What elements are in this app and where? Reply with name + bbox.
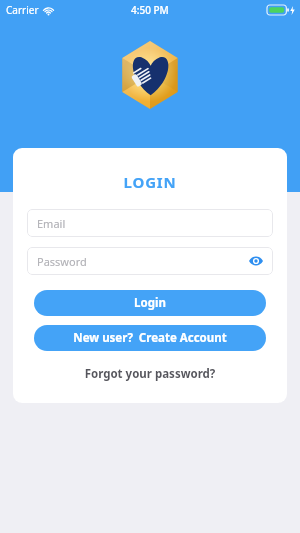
staticText: Email (37, 216, 263, 231)
button[interactable]: Forgot your password? (13, 364, 287, 384)
button[interactable]: Email (27, 209, 273, 237)
button[interactable]: Show password (249, 254, 263, 268)
staticText: New user? Create Account (73, 330, 227, 346)
button[interactable]: Login (34, 290, 266, 316)
button[interactable]: Password (27, 247, 273, 275)
other: App logo (118, 40, 182, 110)
staticText: Login (134, 295, 166, 311)
staticText: 4:50 PM (131, 3, 169, 17)
staticText: LOGIN (13, 172, 287, 192)
staticText: Carrier (6, 3, 39, 17)
staticText: Password (37, 254, 249, 269)
staticText: Forgot your password? (13, 366, 287, 382)
button[interactable]: New user? Create Account (34, 325, 266, 351)
